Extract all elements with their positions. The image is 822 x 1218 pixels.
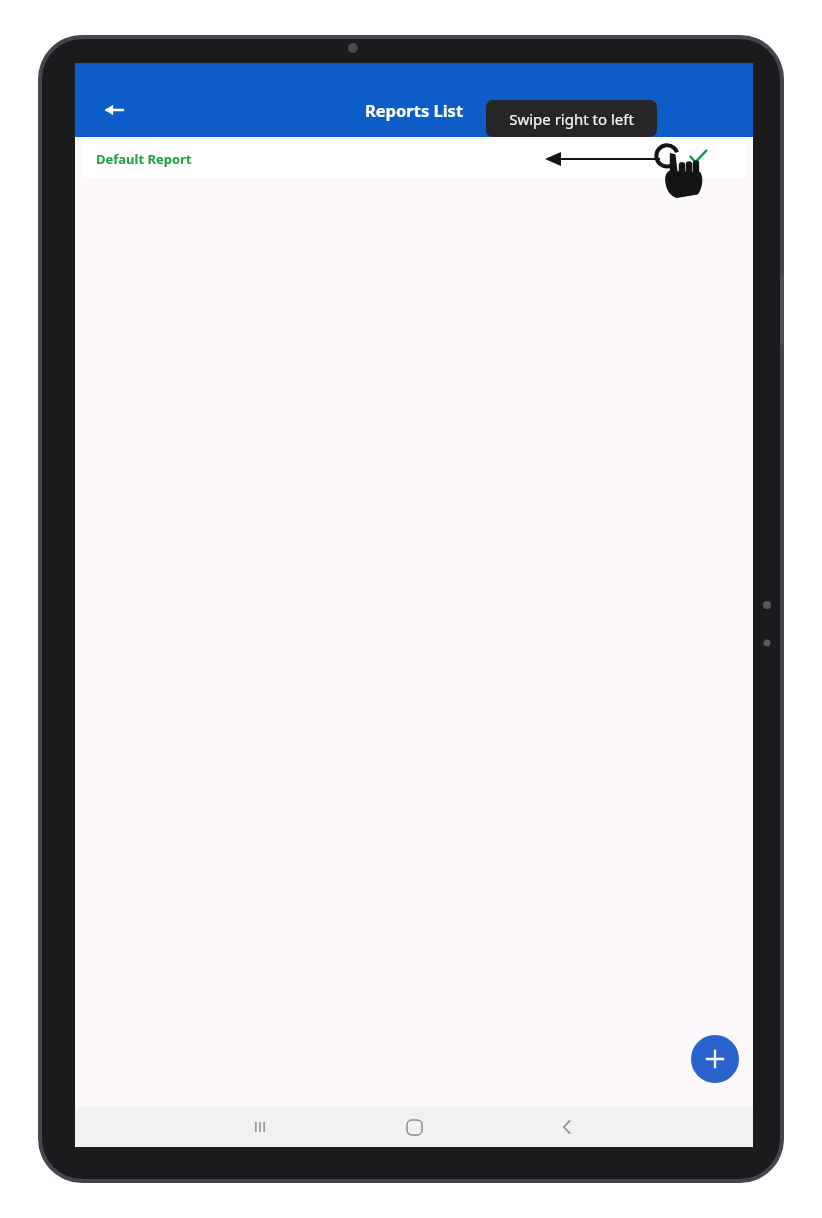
button[interactable]: Back bbox=[93, 89, 135, 131]
button[interactable]: Home bbox=[380, 1110, 448, 1144]
staticText: Swipe right to left bbox=[509, 109, 634, 129]
staticText: Reports List bbox=[75, 99, 753, 121]
button[interactable]: Recent apps bbox=[226, 1110, 294, 1144]
button[interactable]: Default Report bbox=[82, 139, 746, 178]
button[interactable]: Add report bbox=[691, 1035, 739, 1083]
staticText: Default Report bbox=[96, 150, 192, 168]
button[interactable]: Back bbox=[533, 1110, 601, 1144]
